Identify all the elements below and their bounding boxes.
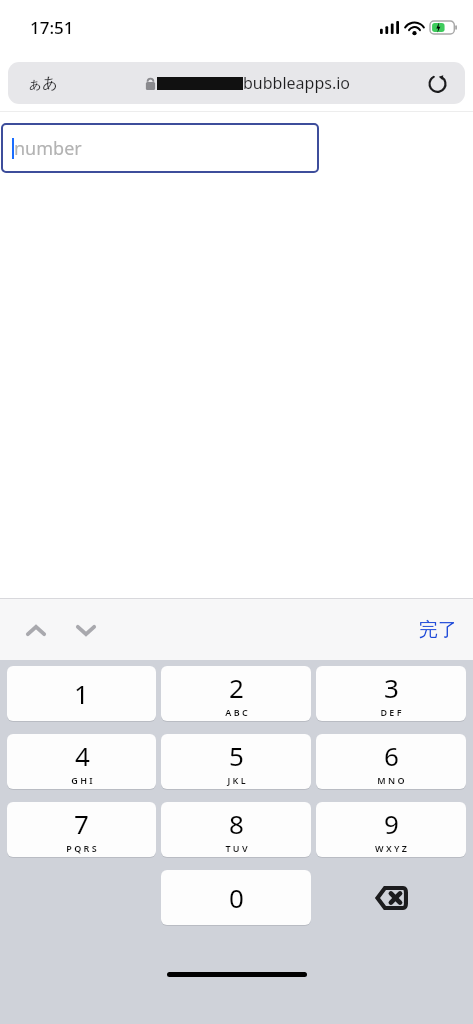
staticText: A B C <box>225 706 248 718</box>
staticText: 0 <box>229 880 244 915</box>
button[interactable]: Delete <box>316 870 466 925</box>
button[interactable]: Reload page <box>423 69 451 97</box>
button[interactable]: 3 <box>316 666 466 721</box>
staticText: 4 <box>75 738 90 773</box>
button[interactable]: 0 <box>161 870 311 925</box>
staticText: bubbleapps.io <box>243 72 350 94</box>
staticText: T U V <box>225 842 248 854</box>
staticText: M N O <box>377 774 405 786</box>
staticText: 7 <box>74 806 89 841</box>
button[interactable]: 8 <box>161 802 311 857</box>
staticText: 3 <box>384 670 399 705</box>
button[interactable]: Next field <box>66 610 106 650</box>
staticText: D E F <box>380 706 402 718</box>
staticText: ぁあ <box>27 74 58 93</box>
button[interactable]: ぁあ <box>8 62 465 104</box>
staticText: 8 <box>229 806 244 841</box>
button[interactable]: number <box>1 123 319 173</box>
button[interactable]: 4 <box>7 734 156 789</box>
staticText: 9 <box>384 806 399 841</box>
staticText: W X Y Z <box>375 842 407 854</box>
button[interactable]: 2 <box>161 666 311 721</box>
staticText: 完了 <box>419 618 457 642</box>
staticText: P Q R S <box>66 842 97 854</box>
button[interactable]: 9 <box>316 802 466 857</box>
staticText: 1 <box>74 676 89 711</box>
button[interactable]: 7 <box>7 802 156 857</box>
staticText: number <box>14 136 82 161</box>
staticText: J K L <box>227 774 246 786</box>
staticText: G H I <box>71 774 93 786</box>
button[interactable]: 6 <box>316 734 466 789</box>
button[interactable]: 完了 <box>411 612 465 648</box>
staticText: 6 <box>384 738 399 773</box>
button[interactable]: 5 <box>161 734 311 789</box>
staticText: 17:51 <box>30 16 74 39</box>
button[interactable]: Previous field <box>16 610 56 650</box>
button[interactable]: 1 <box>7 666 156 721</box>
staticText: 5 <box>229 738 244 773</box>
staticText: 2 <box>229 670 244 705</box>
